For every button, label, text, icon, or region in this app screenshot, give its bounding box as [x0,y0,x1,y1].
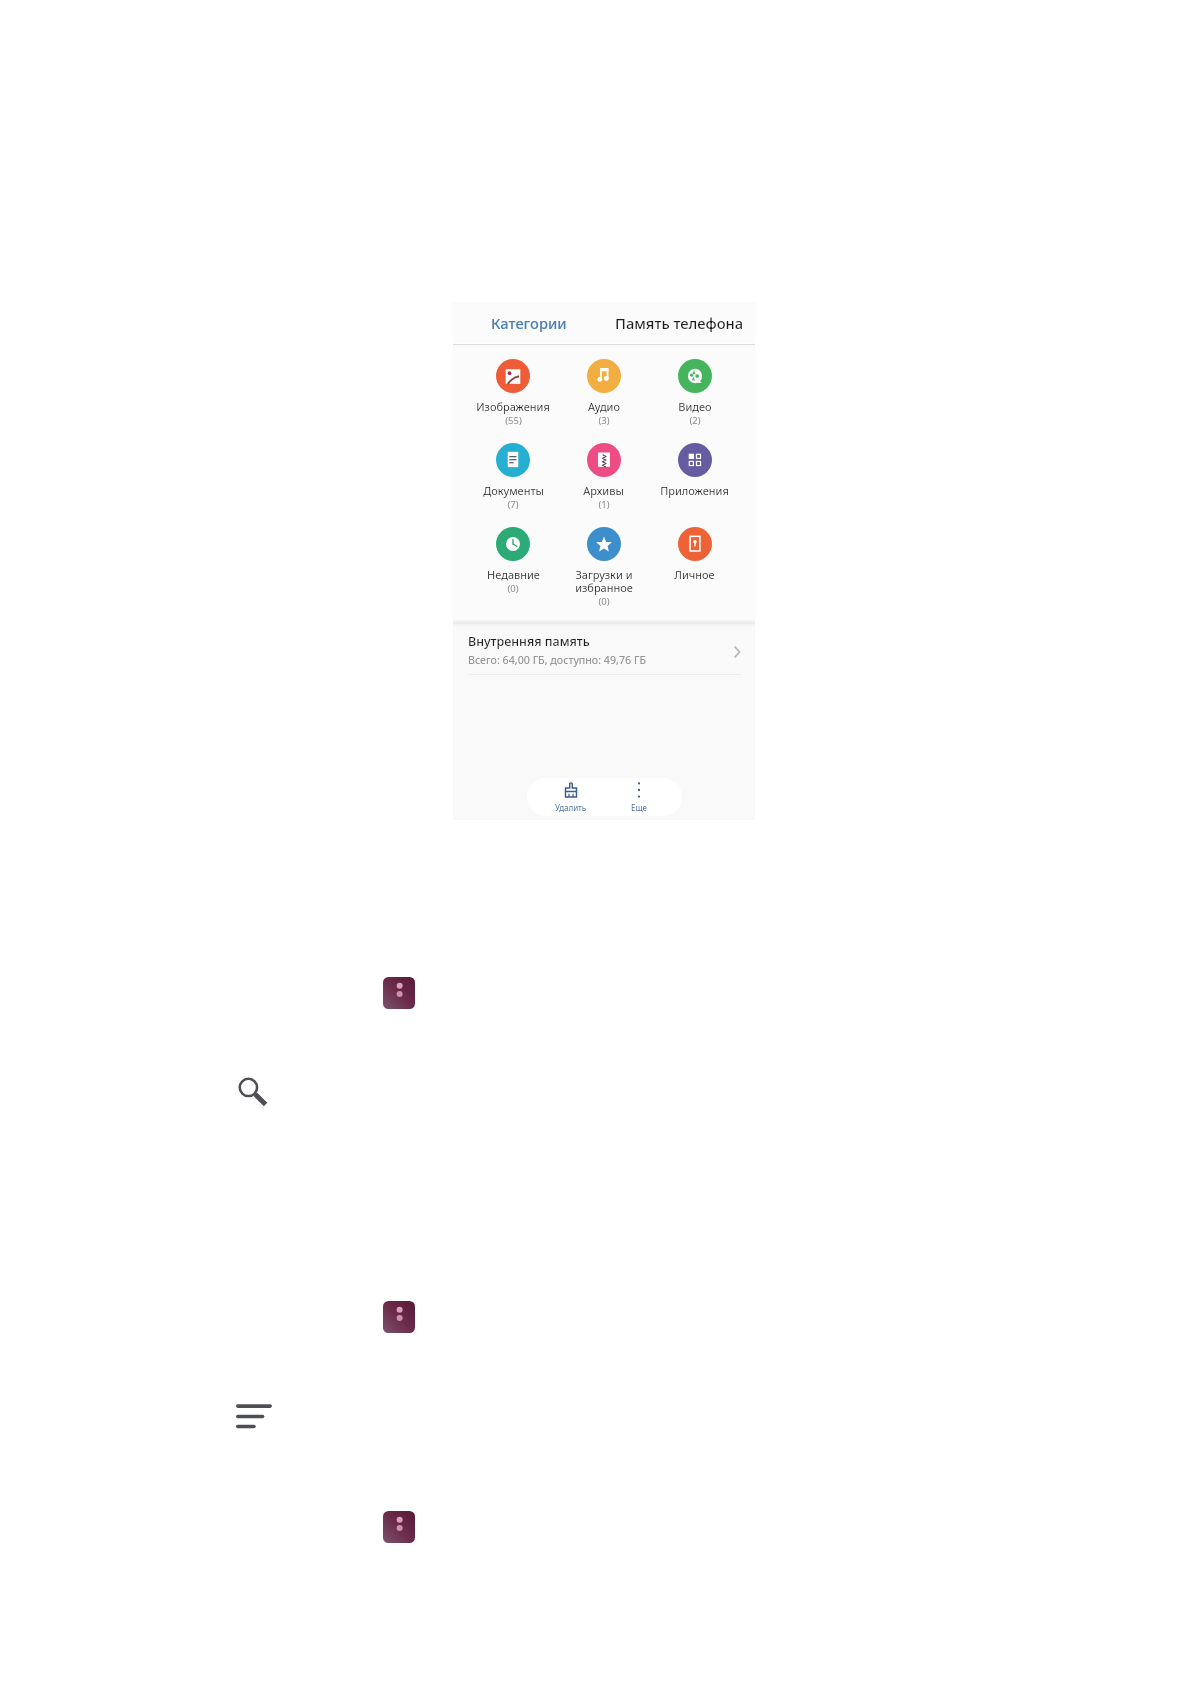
button[interactable]: Архивы [558,443,649,527]
staticText: (0) [598,595,610,608]
staticText: (3) [598,414,610,427]
button[interactable]: More options [383,1511,415,1543]
staticText: Архивы [583,483,624,498]
button[interactable]: More options [383,1301,415,1333]
button[interactable]: More options [383,977,415,1009]
button[interactable]: Категории [453,302,604,343]
staticText: Память телефона [615,313,744,333]
staticText: Аудио [588,399,620,414]
staticText: Загрузки и избранное [575,567,633,595]
staticText: Изображения [476,399,550,414]
button[interactable]: Личное [649,527,740,611]
staticText: Внутренняя память [468,633,590,650]
button[interactable]: Документы [468,443,558,527]
staticText: (0) [507,582,519,595]
staticText: Недавние [487,567,540,582]
button[interactable]: Внутренняя память [453,626,755,675]
staticText: Видео [678,399,712,414]
button[interactable]: Загрузки и избранное [558,527,649,611]
button[interactable]: Память телефона [604,302,755,343]
staticText: (7) [507,498,519,511]
staticText: (1) [598,498,610,511]
button[interactable]: Еще [609,778,669,816]
staticText: Категории [491,313,567,333]
button[interactable]: Приложения [649,443,740,527]
button[interactable]: Search [236,1075,270,1109]
staticText: (55) [505,414,522,427]
staticText: Документы [483,483,544,498]
button[interactable]: Недавние [468,527,558,611]
staticText: Удалить [555,802,587,813]
staticText: Личное [674,567,715,582]
staticText: Приложения [660,483,729,498]
button[interactable]: Sort [236,1403,272,1429]
staticText: (2) [689,414,701,427]
staticText: Еще [631,802,648,813]
staticText: Всего: 64,00 ГБ, доступно: 49,76 ГБ [468,653,646,668]
button[interactable]: Изображения [468,359,558,443]
button[interactable]: Аудио [558,359,649,443]
button[interactable]: Удалить [541,778,601,816]
button[interactable]: Видео [649,359,740,443]
